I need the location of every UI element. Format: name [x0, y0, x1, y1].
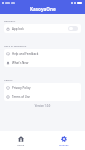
staticText: KasoyaOne: [30, 6, 56, 12]
button[interactable]: Terms of Use: [4, 92, 81, 101]
button[interactable]: Privacy Policy: [4, 83, 81, 92]
button[interactable]: Help and Feedback: [4, 49, 81, 58]
other: Home: [18, 136, 24, 142]
staticText: What's New: [12, 61, 29, 65]
staticText: Privacy Policy: [12, 86, 31, 90]
staticText: Help and Feedback: [12, 52, 39, 56]
staticText: Terms of Use: [12, 95, 30, 99]
staticText: GENERAL: [4, 19, 16, 22]
staticText: App lock: [12, 27, 24, 31]
button[interactable]: Home: [0, 131, 42, 150]
staticText: HELP & FEEDBACK: [4, 44, 27, 47]
button[interactable]: Settings: [42, 131, 85, 150]
other: Settings: [61, 136, 67, 142]
staticText: Home: [17, 143, 25, 146]
staticText: Settings: [59, 143, 69, 146]
button[interactable]: What's New: [4, 58, 81, 67]
staticText: Version 1.0.0: [0, 104, 85, 108]
staticText: ABOUT: [4, 78, 13, 81]
button[interactable]: App lock: [4, 24, 81, 33]
